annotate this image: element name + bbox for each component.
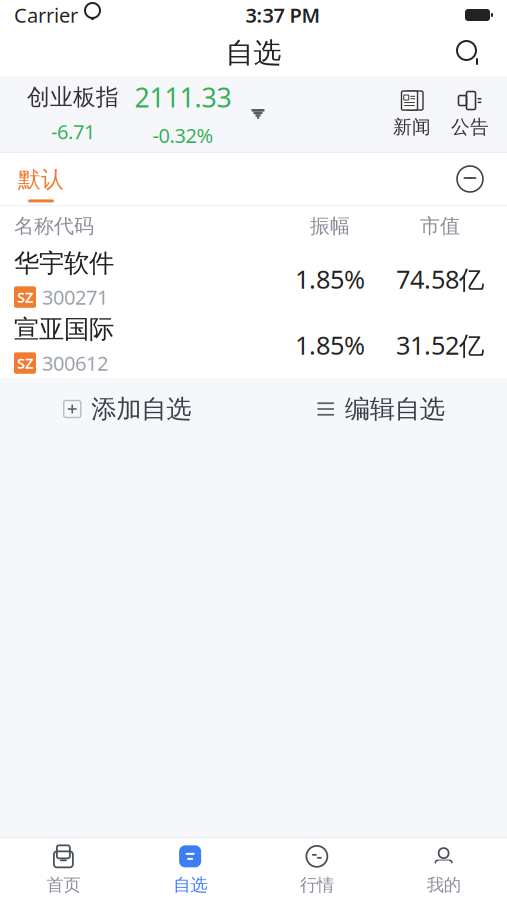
staticText: 首页	[46, 874, 80, 896]
button[interactable]: 新闻	[383, 89, 441, 138]
staticText: 宣亚国际	[14, 314, 114, 345]
staticText: 1.85%	[295, 262, 365, 296]
button[interactable]: 默认	[0, 156, 78, 202]
button[interactable]: 公告	[441, 89, 507, 138]
staticText: 添加自选	[91, 393, 191, 424]
button[interactable]: 宣亚国际	[0, 312, 507, 378]
staticText: 2111.33	[134, 79, 231, 115]
staticText: 1.85%	[295, 328, 365, 362]
button[interactable]: 自选	[127, 836, 254, 900]
staticText: 创业板指	[27, 83, 119, 111]
staticText: 74.58亿	[396, 262, 484, 296]
button[interactable]: 华宇软件	[0, 246, 507, 312]
staticText: 新闻	[393, 115, 431, 138]
staticText: 编辑自选	[345, 393, 445, 424]
staticText: 自选	[173, 874, 207, 896]
staticText: 3:37 PM	[245, 2, 320, 28]
button[interactable]: 我的	[380, 836, 507, 900]
staticText: Carrier	[14, 2, 78, 28]
button[interactable]: 切换指数	[238, 93, 278, 135]
staticText: -6.71	[51, 118, 95, 145]
staticText: 振幅	[310, 214, 350, 238]
staticText: 名称代码	[14, 214, 94, 238]
staticText: SZ	[17, 287, 33, 307]
staticText: 我的	[427, 874, 461, 896]
button[interactable]: 首页	[0, 836, 127, 900]
staticText: 31.52亿	[396, 328, 484, 362]
button[interactable]: 搜索	[445, 31, 493, 75]
staticText: 默认	[18, 166, 64, 193]
button[interactable]: 添加自选	[50, 383, 203, 434]
staticText: SZ	[17, 353, 33, 373]
staticText: 300612	[42, 350, 108, 376]
staticText: 行情	[300, 874, 334, 896]
staticText: 自选	[225, 36, 281, 70]
staticText: 华宇软件	[14, 248, 114, 279]
staticText: 市值	[420, 214, 460, 238]
staticText: 300271	[42, 284, 108, 310]
button[interactable]: 分组管理	[443, 158, 497, 200]
staticText: -0.32%	[152, 122, 213, 148]
staticText: 公告	[451, 115, 489, 138]
button[interactable]: 行情	[253, 836, 380, 900]
button[interactable]: 编辑自选	[304, 383, 457, 434]
